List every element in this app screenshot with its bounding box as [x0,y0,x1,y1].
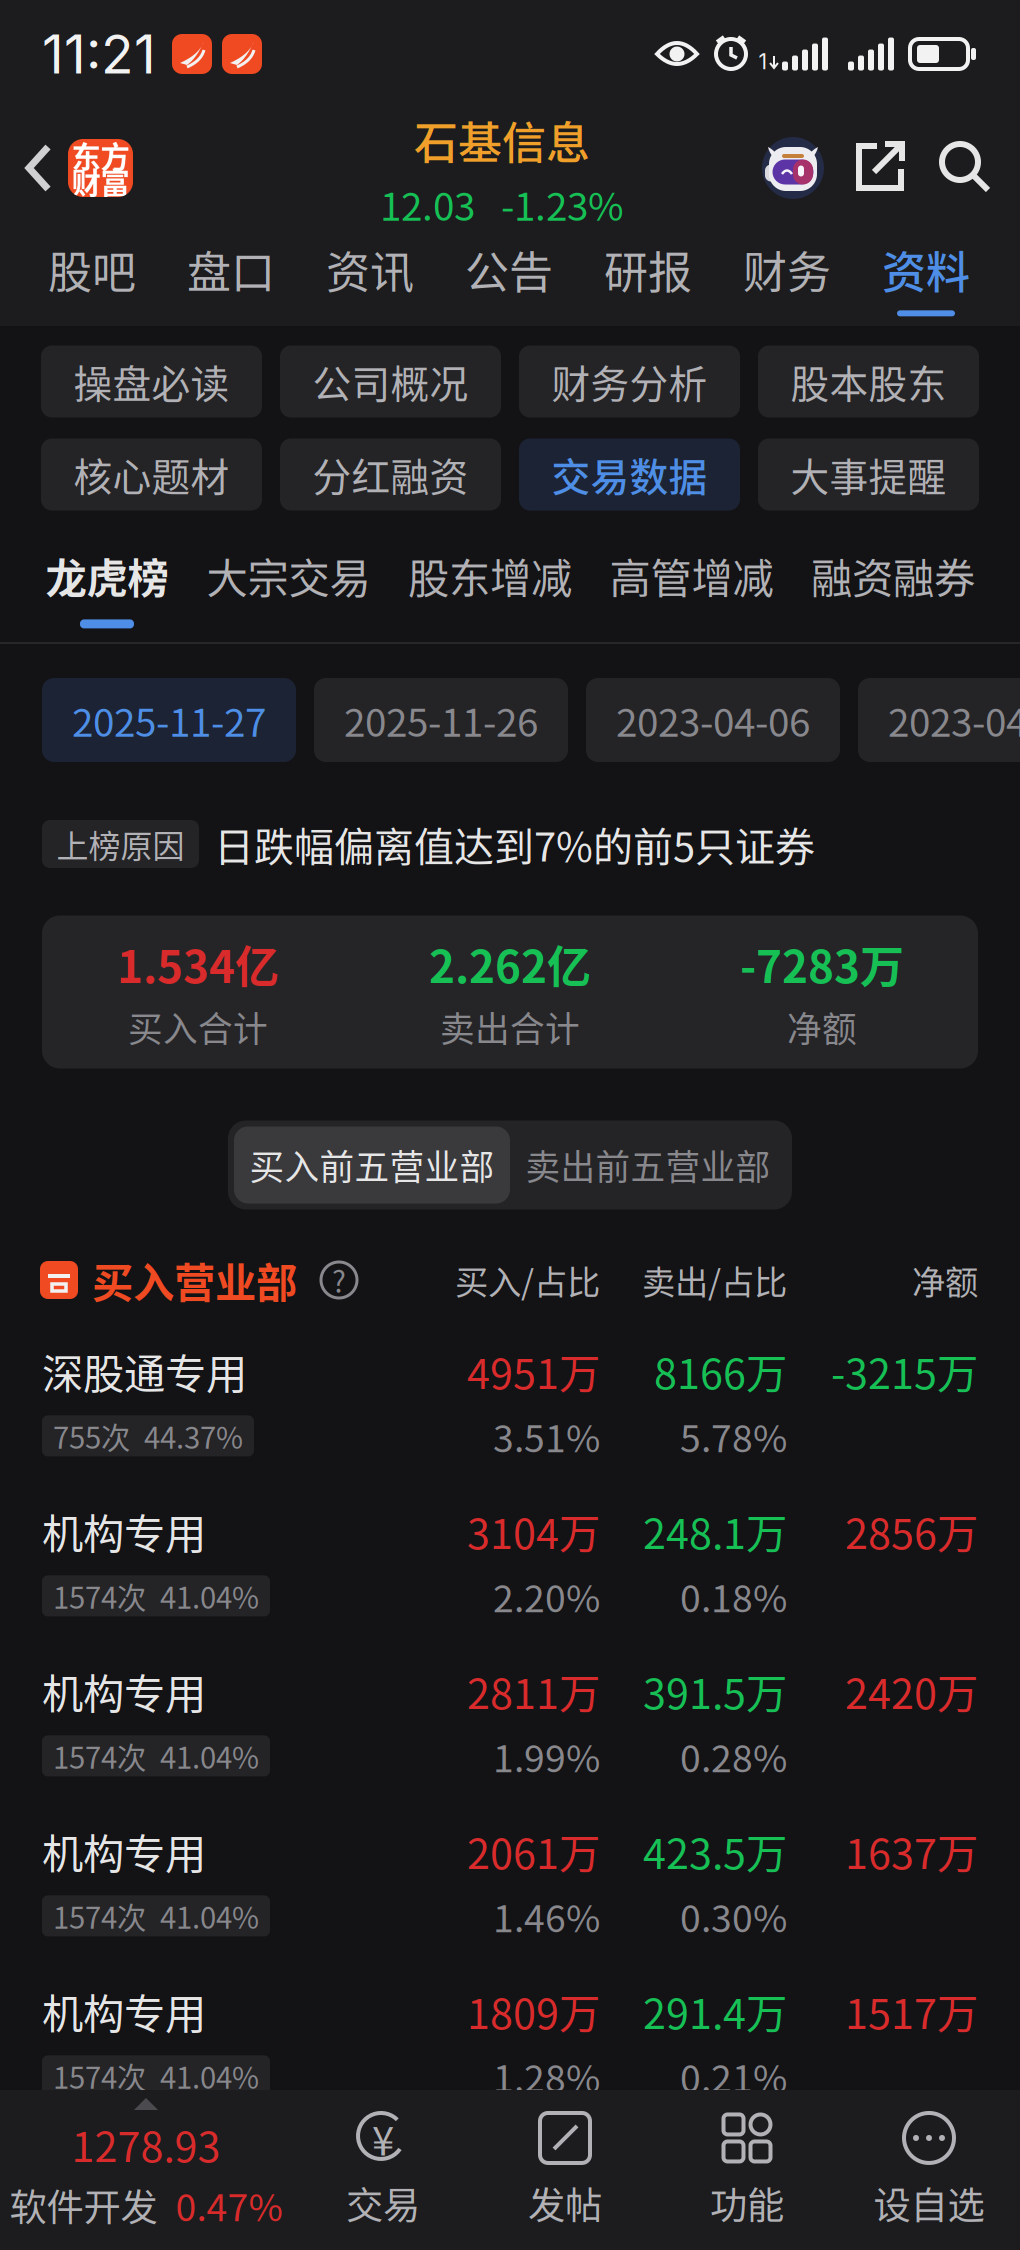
staticText: 卖出前五营业部 [525,1140,770,1190]
button[interactable]: Share [824,108,908,228]
staticText: 买入营业部 [92,1250,297,1310]
button[interactable]: 机构专用 [0,1962,1020,2122]
button[interactable]: 资料 [876,229,976,325]
staticText: 交易数据 [551,446,707,502]
button[interactable]: 财务分析 [519,345,740,417]
button[interactable]: 股吧 [42,229,142,325]
button[interactable]: ¥ [292,2095,474,2245]
button[interactable]: 买入前五营业部 [234,1126,510,1203]
button[interactable]: 机构专用 [0,1802,1020,1962]
staticText: 机构专用 [42,1501,206,1561]
staticText: 买入前五营业部 [249,1140,494,1190]
staticText: 2023-04-04 [888,692,1020,748]
staticText: 交易 [346,2176,420,2230]
staticText: 大事提醒 [790,446,946,502]
staticText: 石基信息 [414,108,590,172]
staticText: 1278.93 [71,2114,220,2174]
staticText: 机构专用 [42,1821,206,1881]
staticText: 功能 [710,2176,784,2230]
button[interactable]: 公告 [459,229,559,325]
staticText: 操盘必读 [73,353,229,409]
staticText: 1.99% [493,1729,600,1783]
staticText: 8166万 [654,1341,787,1401]
staticText: 2420万 [845,1661,978,1721]
staticText: 融资融券 [811,546,975,605]
button[interactable]: 资讯 [320,229,420,325]
button[interactable]: 发帖 [474,2095,656,2245]
staticText: 股吧 [48,238,136,301]
button[interactable]: 龙虎榜 [42,533,172,641]
staticText: 2.262亿 [429,932,591,996]
staticText: 11:21 [42,22,156,86]
staticText: -1.23% [501,176,624,232]
staticText: 财务 [743,238,831,301]
staticText: 买入/占比 [455,1256,600,1304]
button[interactable]: 2025-11-26 [314,678,568,762]
staticText: 股本股东 [790,353,946,409]
staticText: 423.5万 [643,1821,787,1881]
button[interactable]: 大宗交易 [203,533,373,641]
button[interactable]: AI assistant [762,108,824,228]
button[interactable]: 2025-11-27 [42,678,296,762]
staticText: 机构专用 [42,1981,206,2041]
staticText: 2811万 [467,1661,600,1721]
staticText: 财富 [71,160,129,202]
staticText: 5.78% [680,1409,787,1463]
staticText: 上榜原因 [56,821,184,867]
button[interactable]: 机构专用 [0,1642,1020,1802]
button[interactable]: 交易数据 [519,438,740,510]
staticText: 1517万 [845,1981,978,2041]
button[interactable]: 高管增减 [606,533,776,641]
staticText: 1809万 [467,1981,600,2041]
button[interactable]: 核心题材 [41,438,262,510]
staticText: 1574次 41.04% [53,1895,259,1937]
button[interactable]: 操盘必读 [41,345,262,417]
button[interactable]: 2023-04-06 [586,678,840,762]
staticText: 净额 [787,1002,857,1052]
button[interactable]: 盘口 [181,229,281,325]
button[interactable]: 财务 [737,229,837,325]
button[interactable]: 研报 [598,229,698,325]
button[interactable]: 深股通专用 [0,1322,1020,1482]
staticText: 公告 [465,238,553,301]
button[interactable]: 股本股东 [758,345,979,417]
button[interactable]: 股东增减 [405,533,575,641]
button[interactable]: 大事提醒 [758,438,979,510]
staticText: 大宗交易 [206,546,370,605]
staticText: 研报 [604,238,692,301]
button[interactable]: 融资融券 [808,533,978,641]
button[interactable]: 分红融资 [280,438,501,510]
staticText: 净额 [912,1256,978,1304]
button[interactable]: 1278.93 [0,2090,292,2250]
staticText: 1574次 41.04% [53,1575,259,1617]
staticText: 1.534亿 [117,932,279,996]
staticText: 2.20% [493,1569,600,1623]
button[interactable]: 2023-04-04 [858,678,1020,762]
button[interactable]: Back [0,108,141,228]
staticText: 买入合计 [128,1002,268,1052]
staticText: 391.5万 [643,1661,787,1721]
button[interactable]: 机构专用 [0,1482,1020,1642]
staticText: 2025-11-26 [344,692,538,748]
staticText: 0.30% [680,1889,787,1943]
button[interactable]: Search [908,108,1020,228]
button[interactable]: 功能 [656,2095,838,2245]
staticText: 248.1万 [643,1501,787,1561]
button[interactable]: 设自选 [838,2095,1020,2245]
staticText: -7283万 [740,932,904,996]
staticText: 高管增减 [609,546,773,605]
staticText: 1.46% [493,1889,600,1943]
staticText: 1637万 [845,1821,978,1881]
button[interactable]: 公司概况 [280,345,501,417]
staticText: 东方 [71,134,129,176]
staticText: 股东增减 [408,546,572,605]
staticText: ? [332,1259,346,1301]
staticText: 0.28% [680,1729,787,1783]
staticText: 0.18% [680,1569,787,1623]
staticText: 12.03 [380,176,475,232]
staticText: 2023-04-06 [616,692,810,748]
button[interactable]: 卖出前五营业部 [510,1126,786,1203]
